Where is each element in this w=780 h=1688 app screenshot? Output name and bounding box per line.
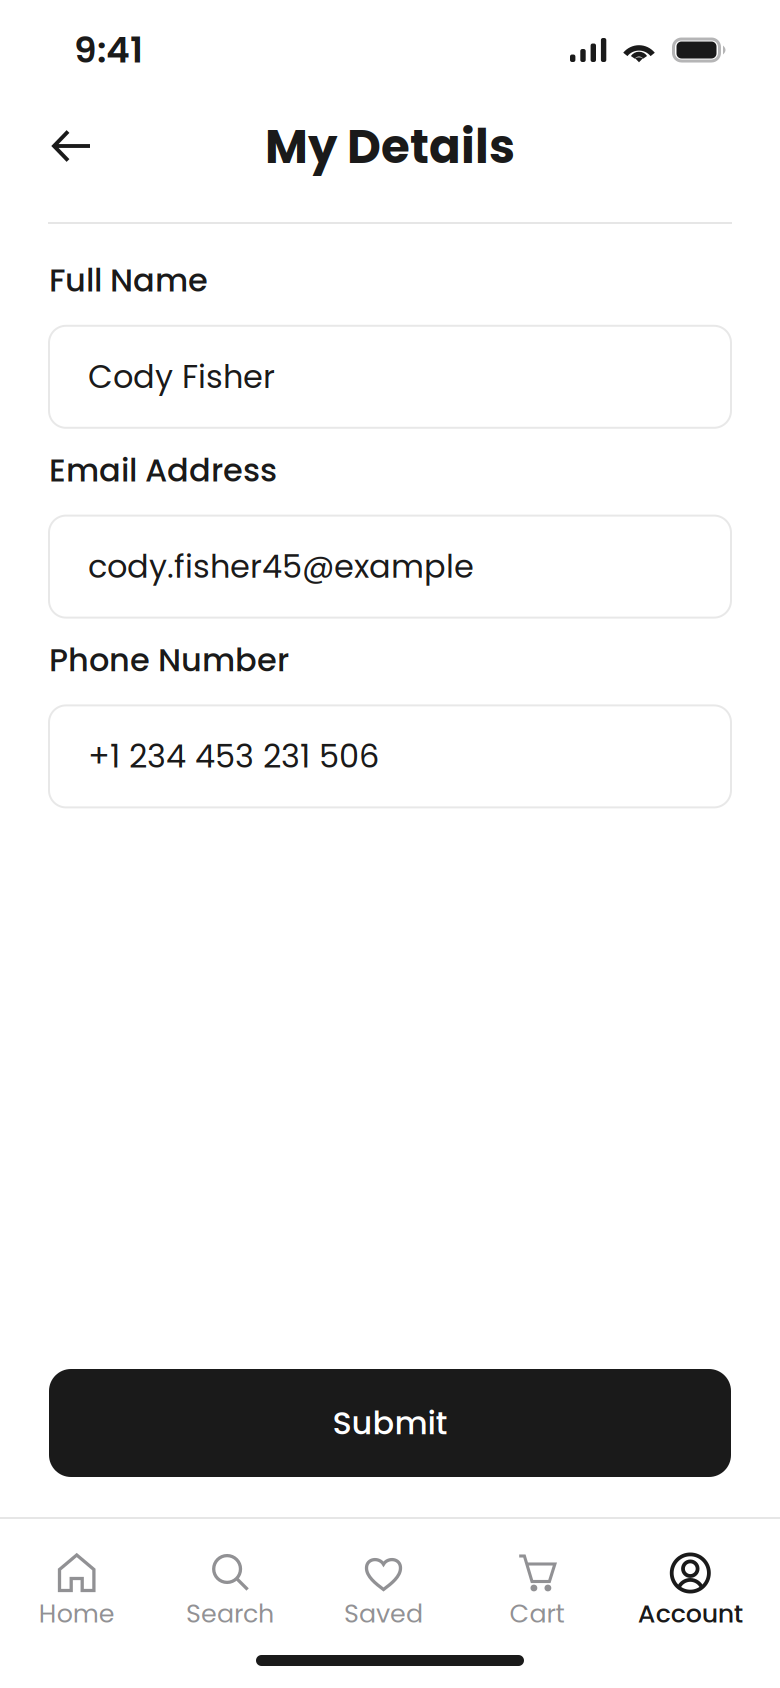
button[interactable]: Submit [49,1369,731,1477]
staticText: Phone Number [49,638,289,682]
staticText: Cart [509,1596,564,1631]
staticText: Cody Fisher [88,354,275,399]
button[interactable]: Search [153,1552,307,1622]
staticText: Full Name [49,258,208,303]
button[interactable]: cody.fisher45@example [49,516,731,618]
button[interactable]: Cody Fisher [49,326,731,428]
staticText: +1 234 453 231 506 [88,734,379,779]
button[interactable]: Account [614,1552,767,1622]
staticText: 9:41 [74,25,143,75]
button[interactable]: Back [40,114,104,178]
staticText: Saved [344,1596,423,1631]
staticText: My Details [265,114,515,179]
button[interactable]: Cart [460,1552,614,1622]
staticText: Home [39,1596,115,1631]
button[interactable]: +1 234 453 231 506 [49,705,731,807]
staticText: cody.fisher45@example [88,544,474,589]
staticText: Email Address [49,448,277,493]
button[interactable]: Home [0,1552,153,1622]
staticText: Search [186,1596,274,1631]
staticText: Submit [332,1401,447,1445]
button[interactable]: Saved [307,1552,460,1622]
staticText: Account [638,1596,743,1631]
